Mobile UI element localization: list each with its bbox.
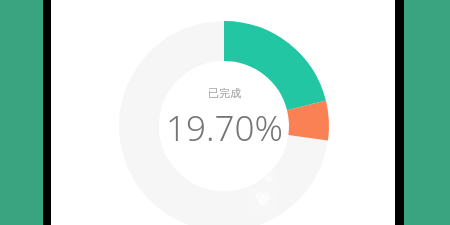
button[interactable]: 19.70% [166,104,283,152]
staticText: 19.70% [166,104,283,152]
button[interactable]: 已完成 [208,86,241,100]
staticText: 已完成 [208,86,241,100]
button[interactable]: Progress 19.70 percent completed [51,0,395,225]
staticText: 我爱安卓 [289,165,393,198]
